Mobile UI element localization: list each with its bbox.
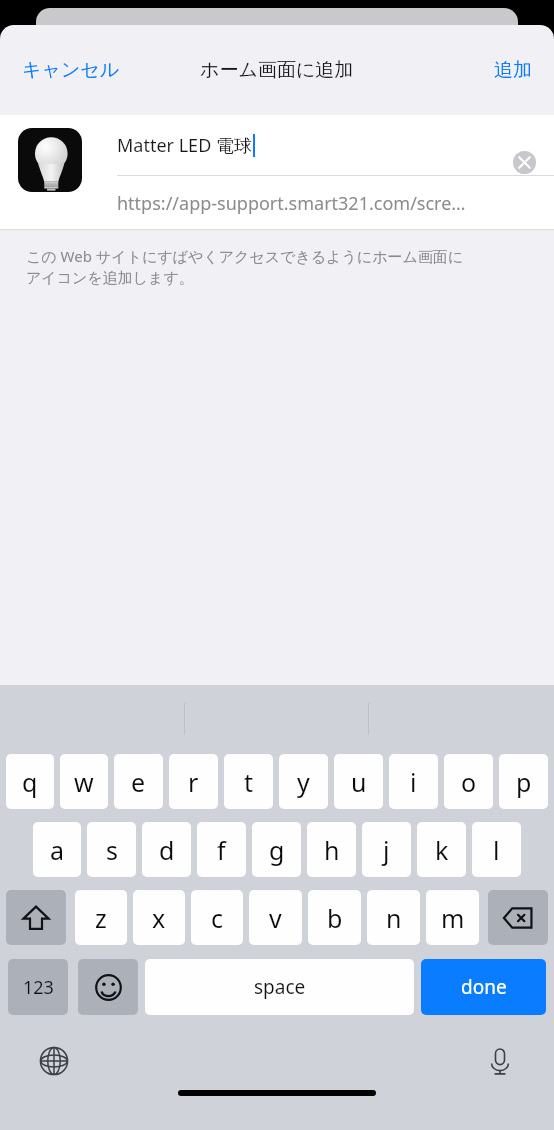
button[interactable]: z <box>75 890 127 945</box>
staticText: h <box>324 833 340 867</box>
staticText: space <box>254 974 306 1000</box>
staticText: b <box>327 901 343 935</box>
staticText: https://app-support.smart321.com/scre… <box>117 191 466 216</box>
staticText: n <box>386 901 402 935</box>
button[interactable]: o <box>444 754 493 809</box>
button[interactable]: space <box>145 959 414 1015</box>
staticText: i <box>410 765 417 799</box>
staticText: y <box>297 765 310 799</box>
button[interactable]: Matter LED 電球 <box>117 115 554 175</box>
staticText: m <box>441 901 465 935</box>
staticText: u <box>351 765 367 799</box>
button[interactable]: Shift <box>6 890 66 945</box>
staticText: o <box>461 765 477 799</box>
staticText: Matter LED 電球 <box>117 133 252 158</box>
button[interactable]: e <box>114 754 163 809</box>
button[interactable]: a <box>33 822 81 877</box>
button[interactable]: u <box>334 754 383 809</box>
staticText: p <box>516 765 532 799</box>
button[interactable]: r <box>169 754 218 809</box>
button[interactable]: キーボードを切り替え <box>30 1037 78 1085</box>
staticText: a <box>50 833 65 867</box>
staticText: x <box>152 901 166 935</box>
button[interactable]: 削除 <box>488 890 548 945</box>
staticText: j <box>383 833 390 867</box>
staticText: w <box>74 765 94 799</box>
button[interactable]: c <box>191 890 243 945</box>
button[interactable]: y <box>279 754 328 809</box>
button[interactable]: b <box>308 890 361 945</box>
button[interactable]: d <box>142 822 191 877</box>
staticText: 123 <box>23 975 54 1000</box>
button[interactable]: https://app-support.smart321.com/scre… <box>117 176 554 230</box>
button[interactable]: t <box>224 754 273 809</box>
button[interactable]: l <box>472 822 521 877</box>
staticText: t <box>244 765 254 799</box>
staticText: g <box>269 833 285 867</box>
staticText: 追加 <box>494 58 532 82</box>
button[interactable]: 音声入力 <box>476 1037 524 1085</box>
button[interactable]: m <box>426 890 479 945</box>
button[interactable]: 追加 <box>486 52 540 88</box>
staticText: k <box>435 833 449 867</box>
button[interactable]: j <box>362 822 411 877</box>
staticText: l <box>493 833 500 867</box>
button[interactable]: i <box>389 754 438 809</box>
button[interactable]: w <box>60 754 108 809</box>
button[interactable]: キャンセル <box>14 52 128 88</box>
staticText: d <box>159 833 175 867</box>
staticText: c <box>211 901 224 935</box>
button[interactable]: n <box>367 890 420 945</box>
button[interactable]: 123 <box>8 959 68 1015</box>
button[interactable]: done <box>421 959 546 1015</box>
button[interactable]: p <box>499 754 548 809</box>
button[interactable]: クリア <box>505 143 543 181</box>
button[interactable]: x <box>133 890 185 945</box>
staticText: z <box>95 901 107 935</box>
button[interactable]: h <box>307 822 356 877</box>
button[interactable]: 絵文字 <box>78 959 138 1015</box>
staticText: f <box>217 833 226 867</box>
staticText: s <box>106 833 118 867</box>
button[interactable]: v <box>249 890 302 945</box>
staticText: q <box>22 765 38 799</box>
staticText: e <box>131 765 146 799</box>
staticText: この Web サイトにすばやくアクセスできるようにホーム画面に アイコンを追加し… <box>26 246 464 287</box>
staticText: done <box>461 974 507 1000</box>
staticText: r <box>188 765 199 799</box>
staticText: v <box>269 901 282 935</box>
button[interactable]: g <box>252 822 301 877</box>
staticText: ホーム画面に追加 <box>200 58 354 82</box>
button[interactable]: f <box>197 822 246 877</box>
staticText: キャンセル <box>22 58 120 82</box>
button[interactable]: s <box>87 822 136 877</box>
button[interactable]: q <box>6 754 54 809</box>
button[interactable]: k <box>417 822 466 877</box>
